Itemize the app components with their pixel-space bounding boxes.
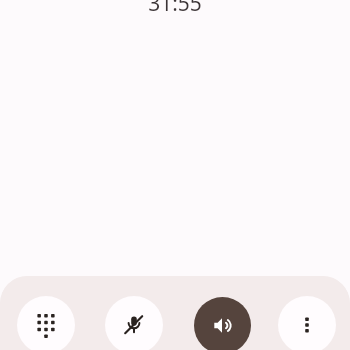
staticText: 31:55	[148, 0, 202, 18]
button[interactable]: Dialpad	[17, 296, 75, 350]
button[interactable]: Mute microphone	[105, 296, 163, 350]
button[interactable]: Speaker	[194, 297, 251, 350]
button[interactable]: More options	[278, 296, 336, 350]
